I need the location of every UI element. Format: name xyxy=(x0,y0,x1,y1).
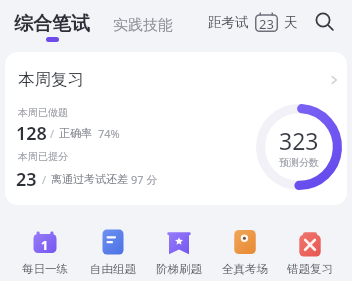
staticText: 本周复习 xyxy=(18,69,84,90)
staticText: 天 xyxy=(284,14,298,31)
staticText: 本周已提分 xyxy=(18,150,68,163)
staticText: 1 xyxy=(41,237,49,254)
staticText: 每日一练 xyxy=(22,262,68,276)
staticText: 错题复习 xyxy=(287,262,333,276)
staticText: 预测分数 xyxy=(279,156,319,169)
staticText: 距考试 xyxy=(208,14,249,31)
staticText: 阶梯刷题 xyxy=(156,262,202,276)
staticText: 全真考场 xyxy=(222,262,268,276)
button[interactable]: Open weekly review xyxy=(325,71,343,89)
button[interactable]: 1 xyxy=(12,226,78,276)
button[interactable]: 错题复习 xyxy=(277,226,343,276)
staticText: 323 xyxy=(279,125,319,156)
staticText: 128 xyxy=(16,121,47,146)
staticText: 97 分 xyxy=(131,172,158,187)
staticText: 实践技能 xyxy=(113,16,173,35)
button[interactable]: 阶梯刷题 xyxy=(146,226,212,276)
button[interactable]: 全真考场 xyxy=(212,226,278,276)
staticText: 23 xyxy=(259,15,274,33)
staticText: 离通过考试还差 xyxy=(51,172,128,186)
button[interactable]: 实践技能 xyxy=(112,16,174,35)
button[interactable]: 自由组题 xyxy=(80,226,146,276)
button[interactable]: 综合笔试 xyxy=(13,12,91,42)
button[interactable]: Search xyxy=(310,6,338,34)
staticText: 自由组题 xyxy=(90,262,136,276)
staticText: / xyxy=(50,126,55,141)
staticText: 74% xyxy=(98,126,120,141)
staticText: 23 xyxy=(16,167,37,192)
staticText: / xyxy=(42,172,47,187)
button[interactable]: 本周复习 xyxy=(5,52,347,205)
staticText: 正确率 xyxy=(59,126,92,140)
staticText: 综合笔试 xyxy=(14,12,90,36)
staticText: 本周已做题 xyxy=(18,106,68,119)
